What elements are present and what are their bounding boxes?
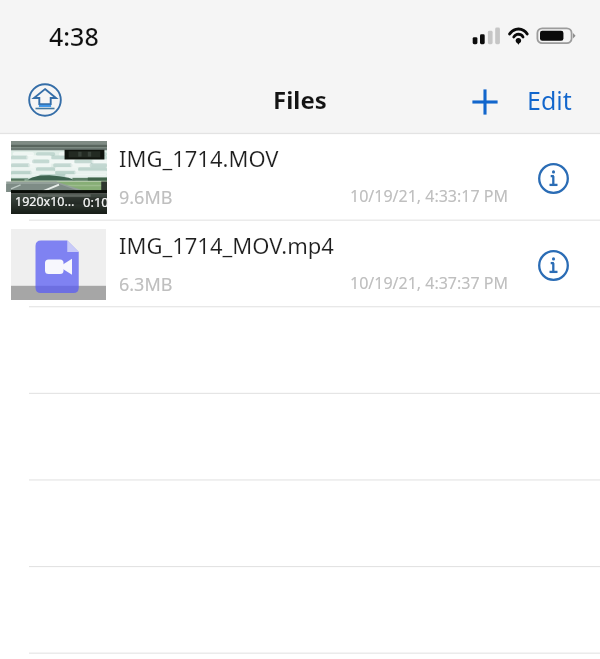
staticText: 1920x10… bbox=[15, 193, 75, 210]
button[interactable]: Info bbox=[532, 157, 574, 199]
button[interactable]: 1920x10… bbox=[0, 134, 600, 221]
staticText: Edit bbox=[527, 83, 572, 117]
staticText: IMG_1714.MOV bbox=[119, 143, 279, 173]
staticText: 4:38 bbox=[49, 19, 99, 53]
staticText: 10/19/21, 4:33:17 PM bbox=[350, 185, 508, 207]
button[interactable]: Upload bbox=[21, 76, 68, 123]
staticText: 10/19/21, 4:37:37 PM bbox=[350, 272, 508, 294]
button[interactable]: Info bbox=[532, 244, 574, 286]
staticText: 9.6MB bbox=[119, 185, 173, 210]
staticText: IMG_1714_MOV.mp4 bbox=[119, 230, 334, 260]
staticText: 0:10 bbox=[83, 193, 109, 211]
staticText: Files bbox=[273, 83, 327, 116]
button[interactable]: Edit bbox=[516, 74, 583, 126]
button[interactable]: IMG_1714_MOV.mp4 bbox=[0, 221, 600, 308]
staticText: 6.3MB bbox=[119, 272, 173, 297]
button[interactable]: Add bbox=[462, 79, 507, 124]
